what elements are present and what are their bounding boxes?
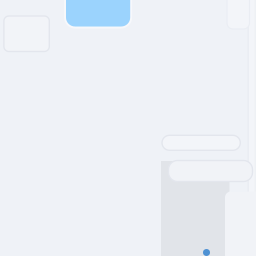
button[interactable]: Card [4, 16, 49, 51]
